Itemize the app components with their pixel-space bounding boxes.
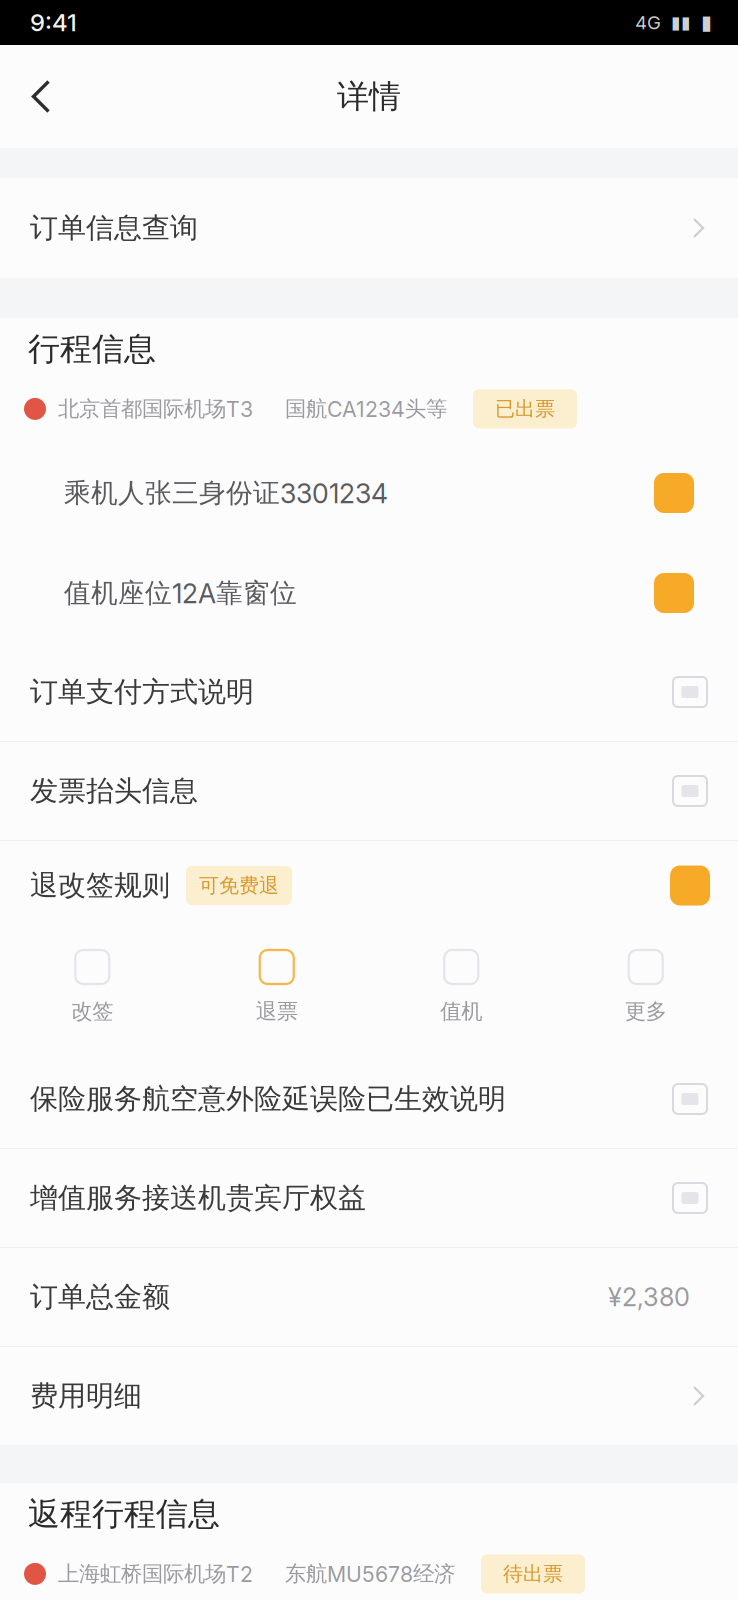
staticText: 改签: [71, 998, 113, 1025]
staticText: 上海虹桥国际机场T2: [58, 1560, 253, 1587]
staticText: 已出票: [495, 396, 555, 421]
button[interactable]: 乘机人张三身份证3301234: [0, 443, 738, 543]
button[interactable]: 改签: [0, 930, 184, 1050]
button[interactable]: 订单总金额: [0, 1248, 738, 1346]
button[interactable]: Back: [0, 45, 82, 148]
button[interactable]: 订单信息查询: [0, 178, 738, 278]
button[interactable]: 值机座位12A靠窗位: [0, 543, 738, 643]
staticText: 退改签规则: [30, 868, 170, 903]
staticText: 值机: [440, 998, 482, 1025]
button[interactable]: 退改签规则: [0, 841, 738, 930]
staticText: 详情: [337, 76, 401, 117]
staticText: 订单总金额: [30, 1279, 170, 1315]
staticText: 行程信息: [28, 329, 156, 369]
staticText: 发票抬头信息: [30, 773, 198, 809]
staticText: 待出票: [503, 1561, 563, 1586]
staticText: 乘机人张三身份证3301234: [64, 476, 388, 510]
staticText: 退票: [256, 998, 298, 1025]
staticText: ¥2,380: [608, 1282, 690, 1312]
staticText: ▮: [701, 11, 712, 34]
button[interactable]: 更多: [553, 930, 738, 1050]
staticText: 4G: [635, 11, 661, 34]
button[interactable]: 增值服务接送机贵宾厅权益: [0, 1149, 738, 1247]
staticText: 东航MU5678经济: [285, 1560, 455, 1587]
staticText: 费用明细: [30, 1378, 142, 1414]
staticText: 更多: [625, 998, 667, 1025]
button[interactable]: 费用明细: [0, 1347, 738, 1445]
staticText: 增值服务接送机贵宾厅权益: [30, 1180, 366, 1216]
staticText: 值机座位12A靠窗位: [64, 576, 297, 610]
staticText: ▮▮: [671, 12, 691, 33]
staticText: 北京首都国际机场T3: [58, 395, 253, 422]
button[interactable]: 保险服务航空意外险延误险已生效说明: [0, 1050, 738, 1148]
staticText: 订单支付方式说明: [30, 674, 254, 710]
staticText: 可免费退: [199, 873, 279, 898]
button[interactable]: 发票抬头信息: [0, 742, 738, 840]
staticText: 国航CA1234头等: [285, 395, 447, 422]
staticText: 保险服务航空意外险延误险已生效说明: [30, 1081, 506, 1117]
staticText: 订单信息查询: [30, 210, 198, 246]
staticText: 返程行程信息: [28, 1494, 220, 1534]
button[interactable]: 值机: [369, 930, 553, 1050]
button[interactable]: 退票: [184, 930, 369, 1050]
staticText: 9:41: [30, 8, 77, 37]
button[interactable]: 订单支付方式说明: [0, 643, 738, 741]
